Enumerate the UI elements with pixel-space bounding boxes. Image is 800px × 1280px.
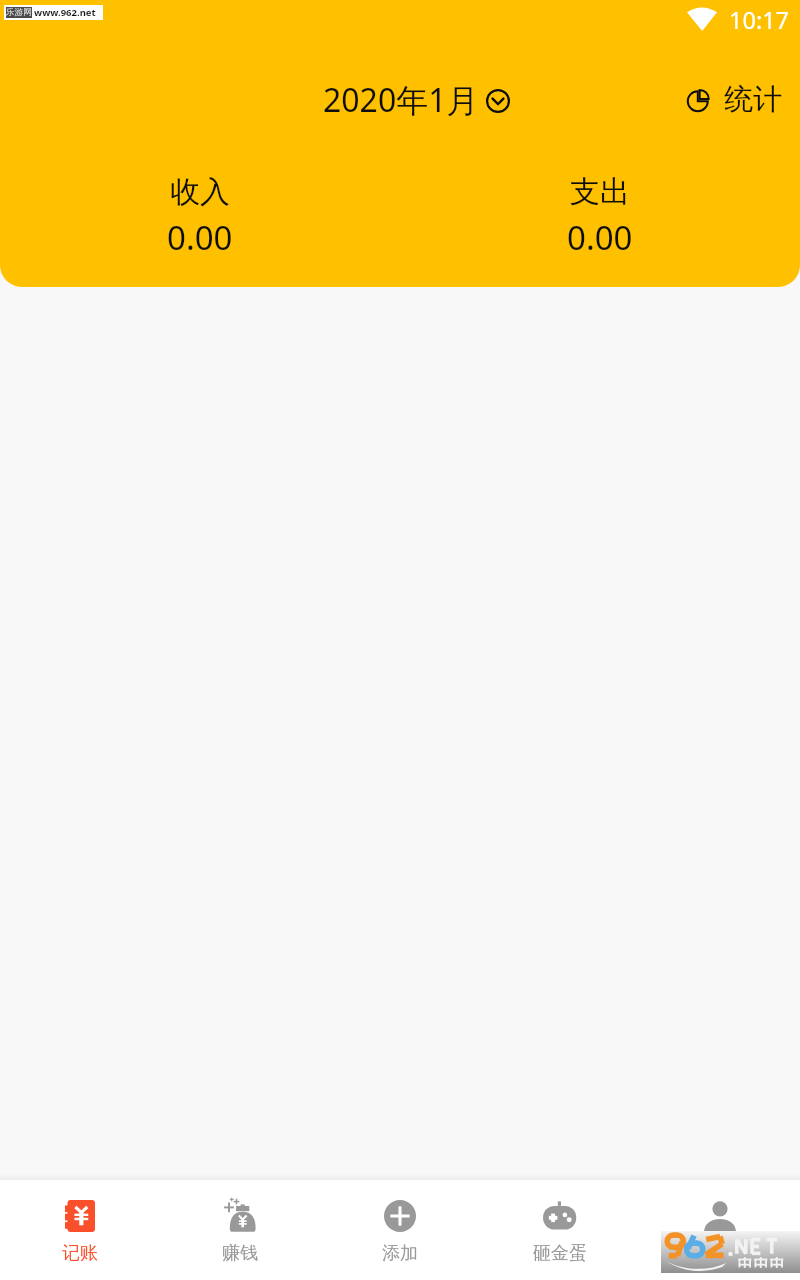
staticText: 2020年1月 bbox=[323, 78, 479, 122]
staticText: 支出 bbox=[570, 173, 630, 211]
staticText: 我的 bbox=[702, 1242, 738, 1265]
button[interactable]: 2020年1月 bbox=[315, 78, 518, 124]
button[interactable]: 支出 bbox=[400, 173, 800, 260]
staticText: 乐游网 bbox=[6, 7, 32, 18]
staticText: 收入 bbox=[170, 173, 230, 211]
staticText: 记账 bbox=[62, 1242, 98, 1265]
staticText: 10:17 bbox=[729, 4, 790, 36]
button[interactable]: 添加 bbox=[320, 1180, 480, 1280]
other: Wi-Fi bbox=[687, 7, 717, 31]
button[interactable]: 我的 bbox=[640, 1180, 800, 1280]
staticText: 砸金蛋 bbox=[533, 1242, 587, 1265]
other: Pick month bbox=[486, 89, 510, 113]
staticText: 赚钱 bbox=[222, 1242, 258, 1265]
button[interactable]: 收入 bbox=[0, 173, 400, 260]
staticText: 统计 bbox=[724, 81, 782, 118]
button[interactable]: 赚钱 bbox=[160, 1180, 320, 1280]
button[interactable]: 砸金蛋 bbox=[480, 1180, 640, 1280]
button[interactable]: 统计 bbox=[688, 81, 782, 118]
staticText: 0.00 bbox=[167, 215, 233, 260]
button[interactable]: 记账 bbox=[0, 1180, 160, 1280]
staticText: www.962.net bbox=[34, 6, 96, 19]
staticText: 0.00 bbox=[567, 215, 633, 260]
staticText: 添加 bbox=[382, 1242, 418, 1265]
